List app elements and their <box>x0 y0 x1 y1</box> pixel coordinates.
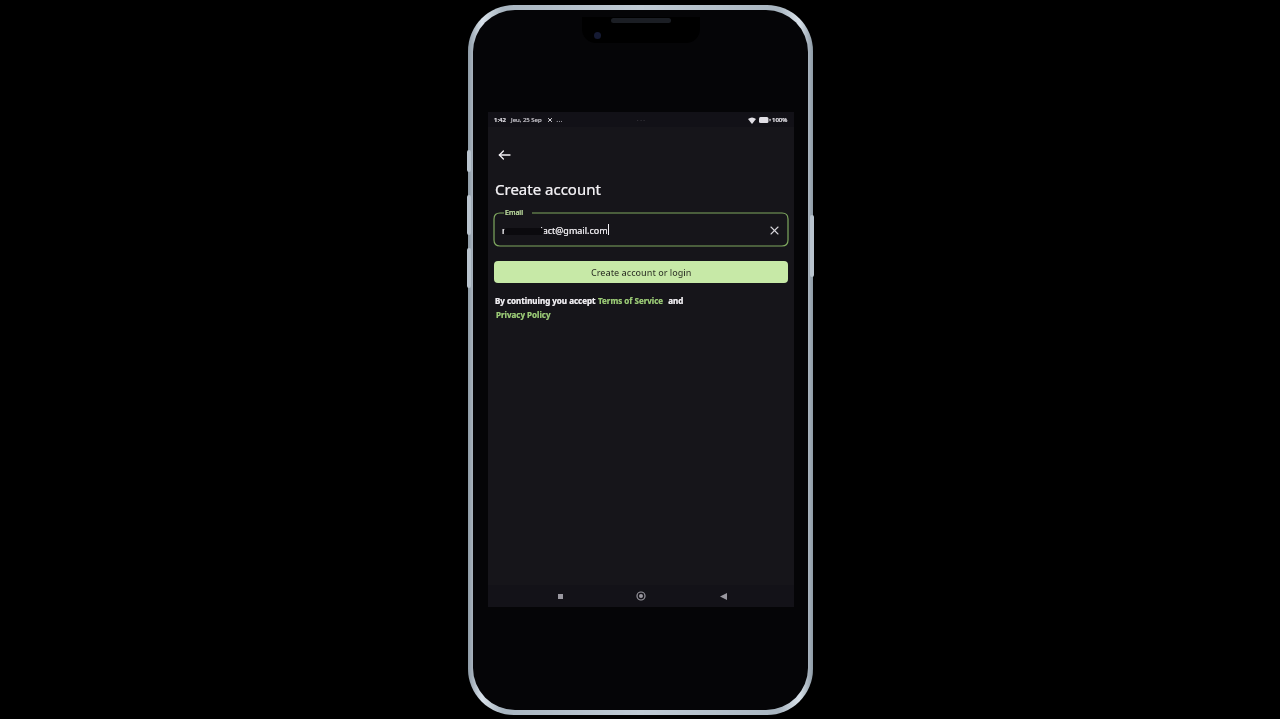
staticText: Terms of Service <box>598 295 664 306</box>
staticText: Privacy Policy <box>496 309 551 320</box>
button[interactable]: Clear email <box>766 222 782 238</box>
staticText: Email <box>505 208 523 218</box>
staticText: · · · <box>637 116 645 124</box>
staticText: and <box>664 295 684 306</box>
button[interactable]: Home <box>631 586 651 606</box>
staticText: ⋯ <box>556 117 562 124</box>
button[interactable]: Create account or login <box>494 261 788 283</box>
staticText: Create account or login <box>591 266 692 278</box>
button[interactable]: Privacy Policy <box>496 309 551 320</box>
staticText: 100% <box>772 116 788 124</box>
button[interactable]: Terms of Service <box>598 295 664 306</box>
button[interactable]: Email <box>494 213 788 246</box>
button[interactable]: Back <box>492 143 516 167</box>
staticText: name.redact@gmail.com <box>502 224 608 236</box>
staticText: Create account <box>495 179 601 199</box>
staticText: 1:42 <box>494 116 506 124</box>
staticText: By continuing you accept <box>495 295 598 306</box>
button[interactable]: Back <box>713 586 733 606</box>
button[interactable]: Recents <box>550 586 570 606</box>
staticText: Jeu, 25 Sep <box>511 116 542 124</box>
